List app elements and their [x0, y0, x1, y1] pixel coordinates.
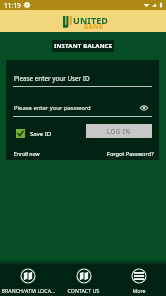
staticText: Save ID	[30, 130, 52, 138]
staticText: INSTANT BALANCE	[54, 42, 113, 50]
button[interactable]: INSTANT BALANCE	[52, 40, 114, 52]
staticText: Please enter your password	[14, 104, 91, 112]
staticText: BRANCH/ATM LOCA...	[1, 287, 56, 294]
staticText: More	[132, 287, 146, 294]
button[interactable]: Save ID	[16, 129, 52, 138]
button[interactable]: Show password	[140, 105, 148, 111]
button[interactable]: BRANCH/ATM LOCA...	[0, 265, 56, 296]
other: Settings	[24, 2, 30, 8]
button[interactable]: More	[111, 265, 166, 296]
staticText: UNITED	[73, 14, 109, 26]
staticText: CONTACT US	[67, 287, 100, 294]
button[interactable]: Forgot Password?	[107, 150, 154, 158]
staticText: Please enter your User ID	[14, 74, 90, 83]
button[interactable]: Enroll now	[14, 150, 40, 157]
staticText: BANK	[84, 22, 104, 31]
staticText: LOG IN	[107, 127, 131, 135]
button[interactable]: LOG IN	[86, 124, 152, 138]
staticText: 11:19	[4, 1, 21, 10]
button[interactable]: CONTACT US	[56, 265, 111, 296]
